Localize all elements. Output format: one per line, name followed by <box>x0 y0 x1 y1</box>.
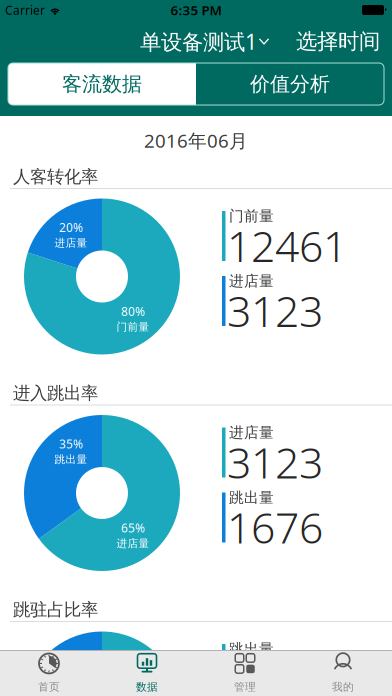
staticText: 3123 <box>227 433 323 490</box>
staticText: 80% <box>121 303 145 319</box>
staticText: 数据 <box>136 680 158 693</box>
staticText: 进店量 <box>116 537 149 550</box>
button[interactable]: 数据 <box>98 651 196 696</box>
staticText: 门前量 <box>229 207 274 225</box>
staticText: 1676 <box>227 650 323 696</box>
staticText: 6:35 PM <box>170 1 221 19</box>
staticText: 2016年06月 <box>144 128 248 153</box>
staticText: 首页 <box>38 680 60 693</box>
button[interactable]: 单设备测试1 <box>132 21 277 62</box>
staticText: 跳出量 <box>229 488 274 506</box>
button[interactable]: 管理 <box>196 651 294 696</box>
staticText: 65% <box>121 520 145 536</box>
staticText: 跳出量 <box>229 640 274 658</box>
button[interactable]: 我的 <box>294 651 392 696</box>
staticText: 35% <box>59 436 83 452</box>
button[interactable]: 价值分析 <box>196 63 384 105</box>
staticText: Carrier <box>5 2 45 18</box>
staticText: 3123 <box>227 282 323 339</box>
button[interactable]: 首页 <box>0 651 98 696</box>
staticText: 门前量 <box>116 320 149 333</box>
staticText: 单设备测试1 <box>140 27 257 56</box>
button[interactable]: 客流数据 <box>8 63 196 105</box>
staticText: 客流数据 <box>62 72 142 96</box>
staticText: 跳驻占比率 <box>13 599 98 620</box>
staticText: 进店量 <box>229 423 274 441</box>
staticText: 42% <box>59 652 83 668</box>
staticText: 我的 <box>332 680 354 693</box>
staticText: 跳出量 <box>54 453 87 466</box>
staticText: 20% <box>59 219 83 235</box>
staticText: 跳出量 <box>54 669 87 682</box>
staticText: 进店量 <box>229 272 274 290</box>
staticText: 价值分析 <box>250 72 330 96</box>
staticText: 进店量 <box>54 236 87 249</box>
staticText: 选择时间 <box>296 28 380 55</box>
staticText: 人客转化率 <box>13 166 98 187</box>
staticText: 管理 <box>234 680 256 693</box>
staticText: 12461 <box>227 217 347 274</box>
staticText: 进入跳出率 <box>13 382 98 404</box>
staticText: 1676 <box>227 498 323 555</box>
button[interactable]: 选择时间 <box>288 22 388 61</box>
